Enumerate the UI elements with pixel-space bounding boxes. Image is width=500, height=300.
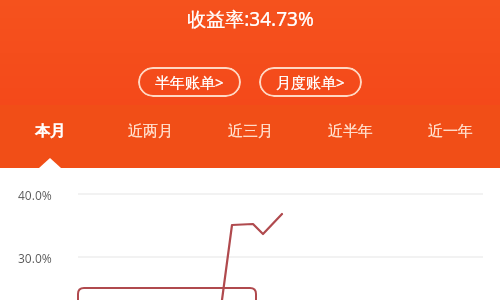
button[interactable]: 月度账单> [259,67,362,97]
staticText: 近半年 [328,122,373,141]
staticText: 近两月 [128,122,173,141]
button[interactable]: 近三月 [200,105,300,158]
staticText: 半年账单> [155,72,224,92]
staticText: 本月 [35,122,65,141]
button[interactable]: 近两月 [100,105,200,158]
button[interactable]: 半年账单> [138,67,241,97]
staticText: 收益率:34.73% [187,6,314,32]
staticText: 月度账单> [276,72,345,92]
staticText: 40.0% [18,187,52,203]
staticText: 近一年 [428,122,473,141]
button[interactable]: 本月 [0,105,100,158]
button[interactable]: 近半年 [300,105,400,158]
button[interactable]: 近一年 [400,105,500,158]
staticText: 近三月 [228,122,273,141]
staticText: 30.0% [18,250,52,266]
